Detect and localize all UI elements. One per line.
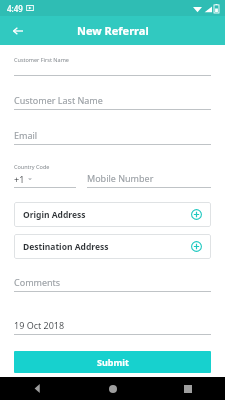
staticText: +1	[14, 173, 25, 185]
button[interactable]: Email	[14, 129, 211, 145]
staticText: 4:49	[7, 3, 23, 14]
staticText: Customer First Name	[14, 56, 69, 63]
staticText: Origin Address	[23, 209, 191, 221]
button[interactable]: Submit	[14, 351, 211, 373]
button[interactable]: Customer Last Name	[14, 94, 211, 110]
staticText: Country Code	[14, 163, 50, 170]
staticText: New Referral	[77, 23, 149, 38]
button[interactable]: Mobile Number	[87, 163, 211, 188]
staticText: Mobile Number	[87, 172, 154, 184]
button[interactable]: Back	[8, 21, 28, 41]
staticText: Email	[14, 129, 38, 141]
button[interactable]: Back	[0, 377, 75, 400]
staticText: 19 Oct 2018	[14, 319, 65, 331]
button[interactable]: Comments	[14, 276, 211, 292]
button[interactable]: 19 Oct 2018	[14, 319, 211, 335]
button[interactable]: Recent apps	[150, 377, 225, 400]
button[interactable]: Customer First Name	[14, 56, 211, 76]
other: Add Origin Address	[191, 209, 202, 220]
staticText: Comments	[14, 276, 61, 288]
staticText: Destination Address	[23, 241, 191, 253]
button[interactable]: Origin Address	[14, 202, 211, 227]
other: Add Destination Address	[191, 241, 202, 252]
staticText: Customer Last Name	[14, 94, 103, 106]
button[interactable]: Destination Address	[14, 234, 211, 259]
button[interactable]: Country Code	[14, 163, 76, 188]
button[interactable]: Home	[75, 377, 150, 400]
staticText: Submit	[97, 356, 129, 368]
